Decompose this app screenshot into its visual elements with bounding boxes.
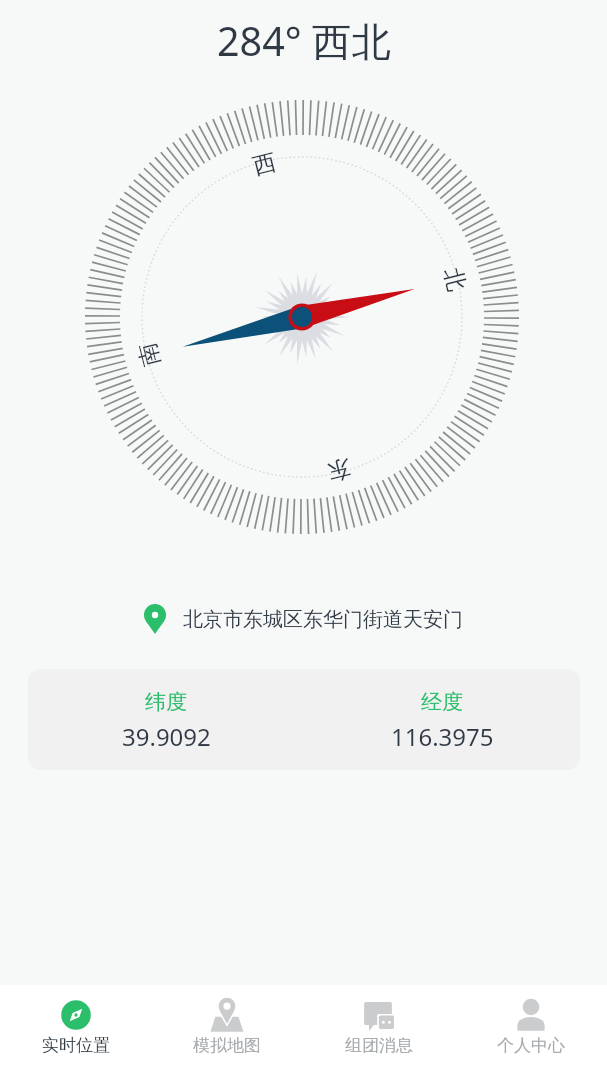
staticText: 个人中心 <box>497 1035 565 1056</box>
button[interactable]: Profile <box>455 985 607 1080</box>
staticText: 纬度 <box>145 689 187 715</box>
staticText: 模拟地图 <box>193 1035 261 1056</box>
staticText: 39.9092 <box>122 720 211 753</box>
staticText: 组团消息 <box>345 1035 413 1056</box>
staticText: 南 <box>132 340 166 369</box>
staticText: 西 <box>250 147 279 181</box>
button[interactable]: Group messages <box>303 985 455 1080</box>
staticText: 北 <box>438 265 471 294</box>
staticText: 284° 西北 <box>217 14 391 68</box>
staticText: 东 <box>325 453 354 486</box>
button[interactable]: Compass dial <box>85 100 519 534</box>
staticText: 实时位置 <box>42 1035 110 1056</box>
staticText: 北京市东城区东华门街道天安门 <box>183 607 463 632</box>
button[interactable]: Simulated map <box>151 985 303 1080</box>
button[interactable]: Live location <box>0 985 151 1080</box>
staticText: 116.3975 <box>391 720 494 753</box>
staticText: 经度 <box>421 689 463 715</box>
button[interactable]: 纬度 <box>28 669 580 770</box>
